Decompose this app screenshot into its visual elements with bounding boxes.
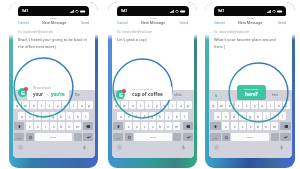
button[interactable]: r — [38, 101, 45, 109]
button[interactable]: u — [161, 101, 168, 109]
button[interactable]: z — [222, 122, 229, 130]
button[interactable]: y — [153, 101, 160, 109]
button[interactable]: i — [169, 101, 176, 109]
button[interactable]: k — [173, 112, 180, 120]
button[interactable]: o — [177, 101, 184, 109]
button[interactable]: Microphone — [82, 145, 87, 150]
button[interactable]: space — [231, 133, 269, 141]
button[interactable]: h — [58, 112, 65, 120]
button[interactable]: d — [133, 112, 140, 120]
button[interactable]: q — [14, 101, 21, 109]
button[interactable]: Emoji — [125, 133, 133, 141]
button[interactable]: i — [70, 101, 77, 109]
button[interactable]: q — [210, 101, 217, 109]
button[interactable]: o — [275, 101, 282, 109]
button[interactable]: 123 — [210, 133, 221, 141]
button[interactable]: v — [149, 122, 156, 130]
button[interactable]: p — [283, 101, 290, 109]
button[interactable]: x — [231, 122, 238, 130]
button[interactable]: Globe — [18, 145, 23, 150]
button[interactable]: t — [46, 101, 53, 109]
button[interactable]: 9:41 — [205, 2, 295, 168]
button[interactable]: c — [239, 122, 246, 130]
button[interactable]: a — [18, 112, 25, 120]
button[interactable]: t — [145, 101, 152, 109]
button[interactable]: w — [121, 101, 128, 109]
button[interactable]: b — [58, 122, 65, 130]
button[interactable]: Return — [183, 133, 193, 141]
button[interactable]: l — [82, 112, 89, 120]
button[interactable]: Shift — [210, 122, 221, 130]
button[interactable]: Cancel — [214, 20, 225, 25]
button[interactable]: c — [141, 122, 148, 130]
button[interactable]: Return — [280, 133, 291, 141]
button[interactable]: k — [74, 112, 81, 120]
button[interactable]: n — [263, 122, 270, 130]
button[interactable]: 9:41 — [9, 2, 98, 168]
button[interactable]: Backspace — [280, 122, 291, 130]
button[interactable]: Return — [83, 133, 93, 141]
button[interactable]: l — [279, 112, 286, 120]
button[interactable]: z — [26, 122, 33, 130]
button[interactable]: Auto correct — [237, 85, 266, 100]
button[interactable]: i — [267, 101, 274, 109]
button[interactable]: q — [113, 101, 120, 109]
button[interactable]: x — [34, 122, 41, 130]
button[interactable]: Backspace — [183, 122, 193, 130]
button[interactable]: Shift — [14, 122, 24, 130]
button[interactable]: w — [218, 101, 225, 109]
button[interactable]: f — [141, 112, 148, 120]
button[interactable]: Globe — [214, 145, 219, 150]
button[interactable]: g — [50, 112, 57, 120]
button[interactable]: r — [137, 101, 144, 109]
button[interactable]: c — [42, 122, 49, 130]
button[interactable]: n — [165, 122, 172, 130]
button[interactable]: l — [181, 112, 188, 120]
button[interactable]: Microphone — [181, 145, 186, 150]
button[interactable]: Misused word — [27, 84, 69, 100]
button[interactable]: g — [149, 112, 156, 120]
button[interactable]: v — [50, 122, 57, 130]
button[interactable]: space — [35, 133, 72, 141]
button[interactable]: p — [185, 101, 192, 109]
button[interactable]: 123 — [14, 133, 24, 141]
button[interactable]: d — [34, 112, 41, 120]
button[interactable]: Backspace — [83, 122, 93, 130]
button[interactable]: j — [165, 112, 172, 120]
button[interactable]: Send — [81, 20, 90, 25]
button[interactable]: o — [78, 101, 85, 109]
button[interactable]: Grammarly — [18, 88, 27, 97]
button[interactable]: e — [226, 101, 233, 109]
button[interactable]: Smart predictions — [124, 86, 172, 100]
button[interactable]: b — [255, 122, 262, 130]
button[interactable]: a — [117, 112, 124, 120]
button[interactable]: e — [30, 101, 37, 109]
button[interactable]: x — [133, 122, 140, 130]
button[interactable]: Send — [180, 20, 189, 25]
button[interactable]: a — [214, 112, 221, 120]
button[interactable]: n — [66, 122, 73, 130]
button[interactable]: s — [125, 112, 132, 120]
button[interactable]: Grammarly — [214, 93, 219, 98]
button[interactable]: f — [239, 112, 246, 120]
button[interactable]: e — [129, 101, 136, 109]
button[interactable]: 9:41 — [108, 2, 197, 168]
button[interactable]: Emoji — [222, 133, 230, 141]
button[interactable]: Cancel — [18, 20, 29, 25]
button[interactable]: v — [247, 122, 254, 130]
button[interactable]: Cancel — [117, 20, 128, 25]
button[interactable]: space — [134, 133, 172, 141]
button[interactable]: y — [251, 101, 258, 109]
button[interactable]: m — [173, 122, 180, 130]
button[interactable]: Send — [278, 20, 287, 25]
button[interactable]: w — [22, 101, 29, 109]
button[interactable]: d — [231, 112, 238, 120]
button[interactable]: k — [271, 112, 278, 120]
button[interactable]: h — [255, 112, 262, 120]
button[interactable]: u — [259, 101, 266, 109]
button[interactable]: y — [54, 101, 61, 109]
button[interactable]: 123 — [113, 133, 123, 141]
